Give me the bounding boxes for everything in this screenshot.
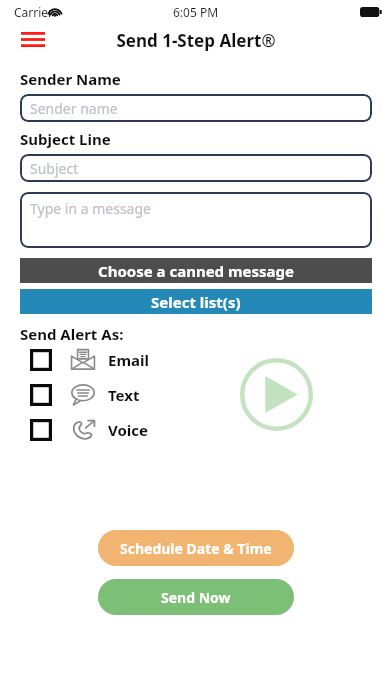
button[interactable]: Choose a canned message (20, 258, 372, 283)
staticText: Subject (30, 159, 79, 178)
staticText: Carrier (14, 4, 54, 20)
button[interactable]: Subject (20, 154, 372, 182)
staticText: Send 1-Step Alert® (0, 29, 392, 52)
staticText: 6:05 PM (173, 4, 219, 20)
staticText: Text (108, 385, 140, 405)
button[interactable]: Send Now (98, 579, 294, 615)
button[interactable]: Play (240, 358, 313, 431)
staticText: Subject Line (20, 129, 111, 149)
staticText: Email (108, 350, 149, 370)
staticText: Type in a message (30, 199, 151, 218)
staticText: Send Alert As: (20, 324, 124, 344)
staticText: Sender name (30, 99, 118, 118)
staticText: Send Now (161, 588, 231, 607)
staticText: Sender Name (20, 69, 121, 89)
staticText: Voice (108, 420, 149, 440)
button[interactable]: Select list(s) (20, 289, 372, 314)
button[interactable]: Menu (18, 27, 48, 51)
button[interactable]: Schedule Date & Time (98, 530, 294, 566)
button[interactable]: Sender name (20, 94, 372, 122)
button[interactable]: Text (30, 383, 170, 406)
button[interactable]: Type in a message (20, 192, 372, 248)
staticText: Schedule Date & Time (120, 539, 272, 558)
staticText: Choose a canned message (98, 261, 295, 281)
button[interactable]: Voice (30, 418, 170, 441)
button[interactable]: Email (30, 348, 170, 371)
staticText: Select list(s) (151, 292, 241, 312)
